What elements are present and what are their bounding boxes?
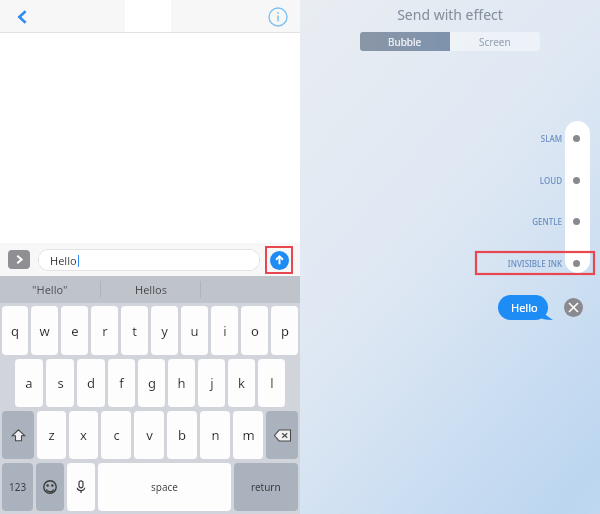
staticText: w [39, 322, 50, 340]
button[interactable]: l [258, 359, 285, 407]
button[interactable]: SLAM [300, 129, 590, 147]
button[interactable]: Return [234, 463, 298, 511]
staticText: q [11, 322, 19, 340]
button[interactable]: y [151, 306, 178, 355]
staticText: e [71, 322, 79, 340]
staticText: d [87, 374, 95, 392]
button[interactable]: Backspace [266, 411, 298, 459]
button[interactable]: Screen [450, 32, 540, 51]
staticText: g [148, 374, 156, 392]
button[interactable]: GENTLE [300, 212, 590, 230]
staticText: Bubble [388, 35, 422, 49]
staticText: j [210, 374, 214, 392]
button[interactable]: e [61, 306, 88, 355]
staticText: z [48, 426, 55, 444]
staticText: GENTLE [300, 216, 562, 227]
button[interactable]: Info [268, 7, 288, 27]
button[interactable]: w [31, 306, 58, 355]
button[interactable]: Back [10, 4, 36, 30]
button[interactable]: c [101, 411, 131, 459]
staticText: m [242, 426, 255, 444]
button[interactable]: h [168, 359, 195, 407]
staticText: n [211, 426, 220, 444]
button[interactable]: b [167, 411, 197, 459]
staticText: f [119, 374, 124, 392]
button[interactable]: a [15, 359, 43, 407]
staticText: t [132, 322, 137, 340]
staticText: Screen [479, 35, 511, 49]
button[interactable]: Bubble [360, 32, 450, 51]
staticText: k [238, 374, 245, 392]
button[interactable]: k [228, 359, 255, 407]
button[interactable]: t [121, 306, 148, 355]
button[interactable]: INVISIBLE INK [300, 254, 590, 272]
button[interactable]: m [233, 411, 263, 459]
staticText: space [151, 480, 178, 494]
button[interactable]: x [69, 411, 98, 459]
button[interactable]: Send [270, 251, 289, 270]
button[interactable]: Dictation [67, 463, 95, 511]
staticText: y [161, 322, 168, 340]
button[interactable]: u [181, 306, 208, 355]
staticText: l [270, 374, 274, 392]
button[interactable]: "Hello" [0, 276, 100, 303]
button[interactable]: g [138, 359, 165, 407]
staticText: c [113, 426, 120, 444]
button[interactable]: p [271, 306, 298, 355]
staticText: h [177, 374, 186, 392]
button[interactable]: Shift [2, 411, 34, 459]
staticText: SLAM [300, 133, 562, 144]
button[interactable]: z [37, 411, 66, 459]
button[interactable]: d [77, 359, 105, 407]
staticText: i [223, 322, 227, 340]
staticText: 123 [9, 480, 27, 494]
staticText: return [251, 480, 281, 494]
button[interactable]: o [241, 306, 268, 355]
staticText: Hellos [135, 282, 167, 297]
staticText: Send with effect [300, 5, 600, 24]
button[interactable]: n [200, 411, 230, 459]
staticText: p [281, 322, 289, 340]
button[interactable]: Apps [8, 250, 30, 269]
staticText: o [251, 322, 259, 340]
button[interactable]: f [108, 359, 135, 407]
staticText: a [25, 374, 33, 392]
staticText: b [178, 426, 186, 444]
button[interactable]: r [91, 306, 118, 355]
staticText: x [80, 426, 87, 444]
staticText: "Hello" [32, 282, 68, 297]
staticText: INVISIBLE INK [300, 258, 562, 269]
staticText: s [57, 374, 64, 392]
button[interactable]: j [198, 359, 225, 407]
button[interactable]: q [2, 306, 28, 355]
staticText: LOUD [300, 175, 562, 186]
button[interactable]: i [211, 306, 238, 355]
button[interactable]: s [46, 359, 74, 407]
staticText: r [102, 322, 108, 340]
button[interactable]: Emoji [36, 463, 64, 511]
button[interactable]: Numbers [2, 463, 33, 511]
button[interactable]: v [134, 411, 164, 459]
button[interactable]: Hellos [101, 276, 200, 303]
staticText: v [146, 426, 153, 444]
button[interactable]: Cancel [564, 298, 583, 317]
staticText: Hello [50, 253, 77, 268]
staticText: Hello [511, 300, 538, 315]
button[interactable]: Hello [38, 249, 260, 271]
button[interactable]: space [98, 463, 231, 511]
button[interactable]: Hello [498, 295, 554, 320]
button[interactable]: LOUD [300, 171, 590, 189]
staticText: u [190, 322, 199, 340]
